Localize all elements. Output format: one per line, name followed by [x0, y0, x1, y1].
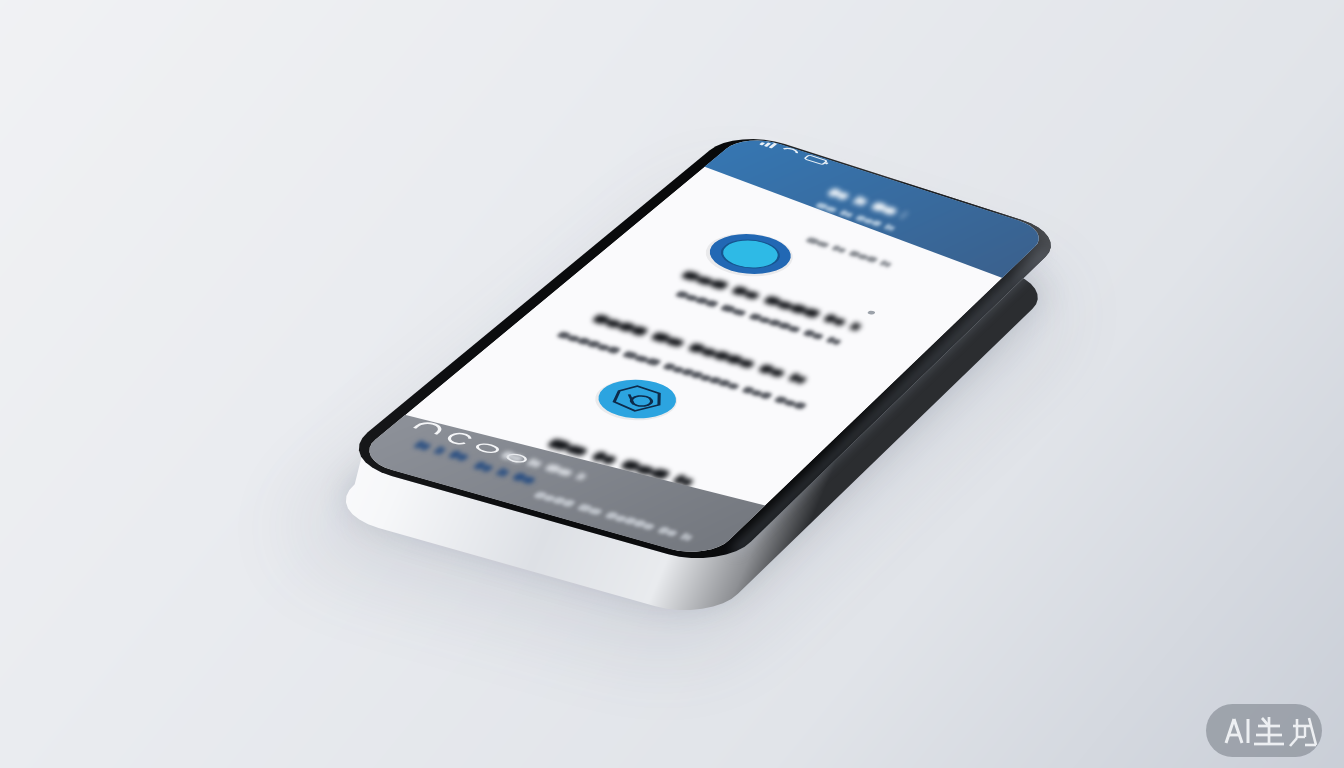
button[interactable]: Smartphone app screen mockup [0, 0, 1344, 768]
